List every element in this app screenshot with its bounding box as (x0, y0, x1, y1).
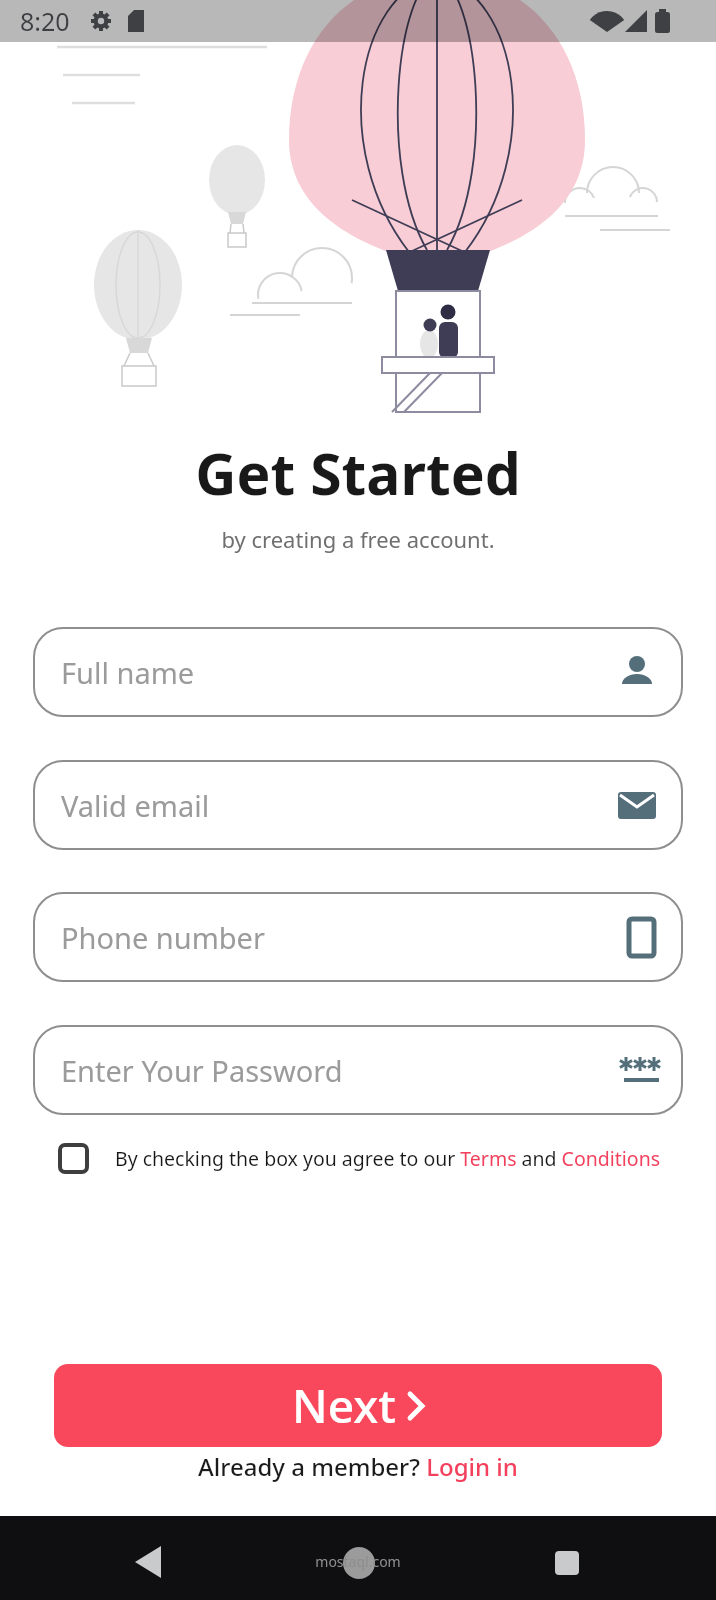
staticText: Next (292, 1374, 396, 1437)
staticText: By checking the box you agree to our Ter… (115, 1145, 661, 1172)
staticText: Phone number (61, 918, 265, 957)
staticText: mostaql.com (0, 1552, 716, 1571)
button[interactable]: Next (54, 1364, 662, 1447)
button[interactable] (125, 1536, 171, 1582)
button[interactable] (336, 1540, 382, 1586)
button[interactable]: Already a member? Login in (0, 1450, 716, 1483)
button[interactable] (544, 1536, 590, 1582)
button[interactable]: By checking the box you agree to our Ter… (58, 1143, 661, 1174)
staticText: Get Started (0, 434, 716, 512)
staticText: by creating a free account. (0, 524, 716, 554)
button[interactable]: Full name (33, 627, 683, 717)
staticText: Full name (61, 653, 195, 692)
staticText: Valid email (61, 786, 210, 825)
button[interactable]: Enter Your Password (33, 1025, 683, 1115)
button[interactable]: Valid email (33, 760, 683, 850)
staticText: Enter Your Password (61, 1051, 343, 1090)
staticText: 8:20 (20, 4, 70, 38)
button[interactable]: Phone number (33, 892, 683, 982)
